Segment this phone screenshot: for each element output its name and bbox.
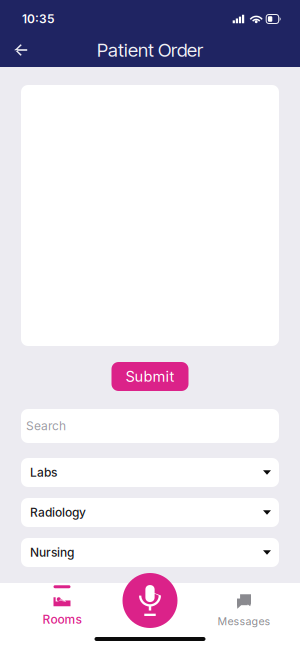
staticText: 10:35 <box>22 12 55 26</box>
staticText: Nursing <box>30 545 74 560</box>
button[interactable]: Search <box>21 409 279 443</box>
button[interactable]: Back <box>0 33 42 67</box>
button[interactable]: Labs <box>21 458 279 487</box>
staticText: Submit <box>125 368 174 385</box>
button[interactable]: Nursing <box>21 538 279 567</box>
button[interactable]: Voice input <box>122 573 177 628</box>
staticText: Labs <box>30 465 57 480</box>
button[interactable]: Radiology <box>21 498 279 527</box>
staticText: Patient Order <box>97 39 203 61</box>
staticText: Rooms <box>42 612 81 627</box>
button[interactable]: Messages <box>188 583 300 629</box>
button[interactable]: Submit <box>111 362 188 391</box>
staticText: Search <box>26 419 66 433</box>
staticText: Radiology <box>30 505 86 520</box>
button[interactable]: Rooms <box>0 583 124 629</box>
staticText: Messages <box>217 615 270 628</box>
